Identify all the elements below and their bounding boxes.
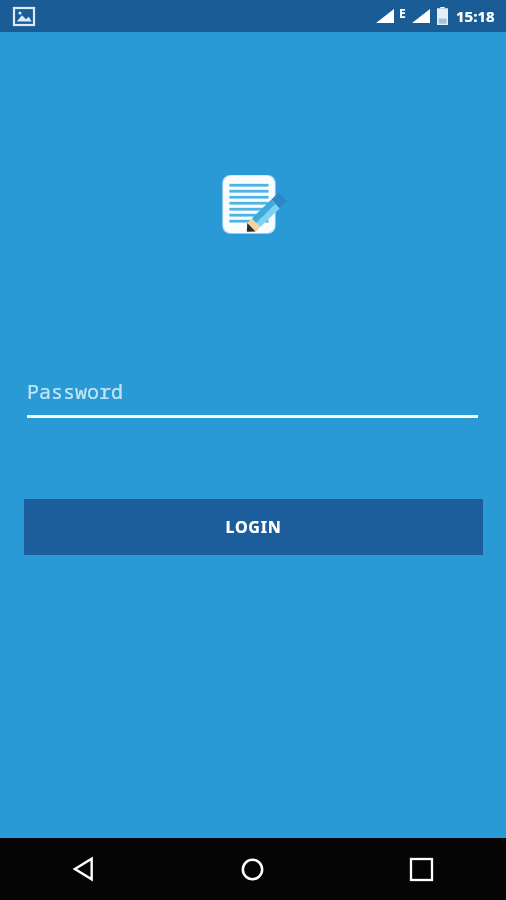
- staticText: 15:18: [456, 6, 495, 26]
- button[interactable]: Back: [0, 838, 168, 900]
- staticText: Password: [27, 378, 123, 405]
- button[interactable]: Password: [27, 375, 478, 418]
- staticText: LOGIN: [225, 516, 282, 538]
- button[interactable]: Recents: [337, 838, 506, 900]
- button[interactable]: LOGIN: [24, 499, 483, 555]
- staticText: E: [399, 5, 406, 21]
- button[interactable]: Home: [168, 838, 337, 900]
